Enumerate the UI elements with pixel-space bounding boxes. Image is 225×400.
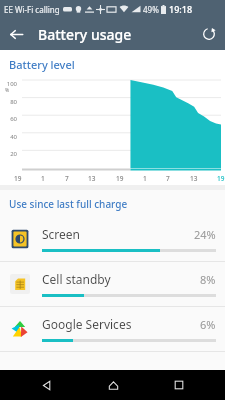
button[interactable]: Back <box>26 370 66 400</box>
staticText: 49% <box>143 4 159 15</box>
staticText: 6% <box>200 317 216 332</box>
staticText: 24% <box>194 227 216 242</box>
staticText: % <box>5 87 10 94</box>
staticText: 8% <box>200 272 216 287</box>
staticText: 1 <box>41 174 45 183</box>
staticText: EE Wi-Fi calling <box>4 4 60 15</box>
button[interactable]: Google Services <box>0 307 225 351</box>
staticText: 100 <box>6 80 17 88</box>
button[interactable]: Back <box>0 18 32 50</box>
staticText: 13 <box>88 174 96 183</box>
staticText: 19 <box>116 174 124 183</box>
button[interactable]: Screen <box>0 217 225 261</box>
staticText: 13 <box>190 174 198 183</box>
staticText: 7 <box>65 174 69 183</box>
staticText: Screen <box>42 226 81 242</box>
button[interactable]: Home <box>93 370 133 400</box>
staticText: 19:18 <box>169 3 193 15</box>
staticText: 80 <box>10 98 17 106</box>
staticText: Google Services <box>42 316 132 332</box>
staticText: Cell standby <box>42 271 111 287</box>
staticText: 60 <box>10 115 17 123</box>
button[interactable]: Refresh <box>193 18 225 50</box>
staticText: Battery usage <box>38 25 132 44</box>
staticText: 7 <box>166 174 170 183</box>
staticText: Battery level <box>9 57 75 72</box>
button[interactable]: Cell standby <box>0 262 225 306</box>
staticText: 20 <box>10 150 17 158</box>
staticText: 1 <box>143 174 147 183</box>
staticText: 19 <box>217 174 225 183</box>
staticText: 19 <box>14 174 22 183</box>
button[interactable]: Recents <box>159 370 199 400</box>
staticText: Use since last full charge <box>9 197 128 211</box>
staticText: 40 <box>10 133 17 141</box>
